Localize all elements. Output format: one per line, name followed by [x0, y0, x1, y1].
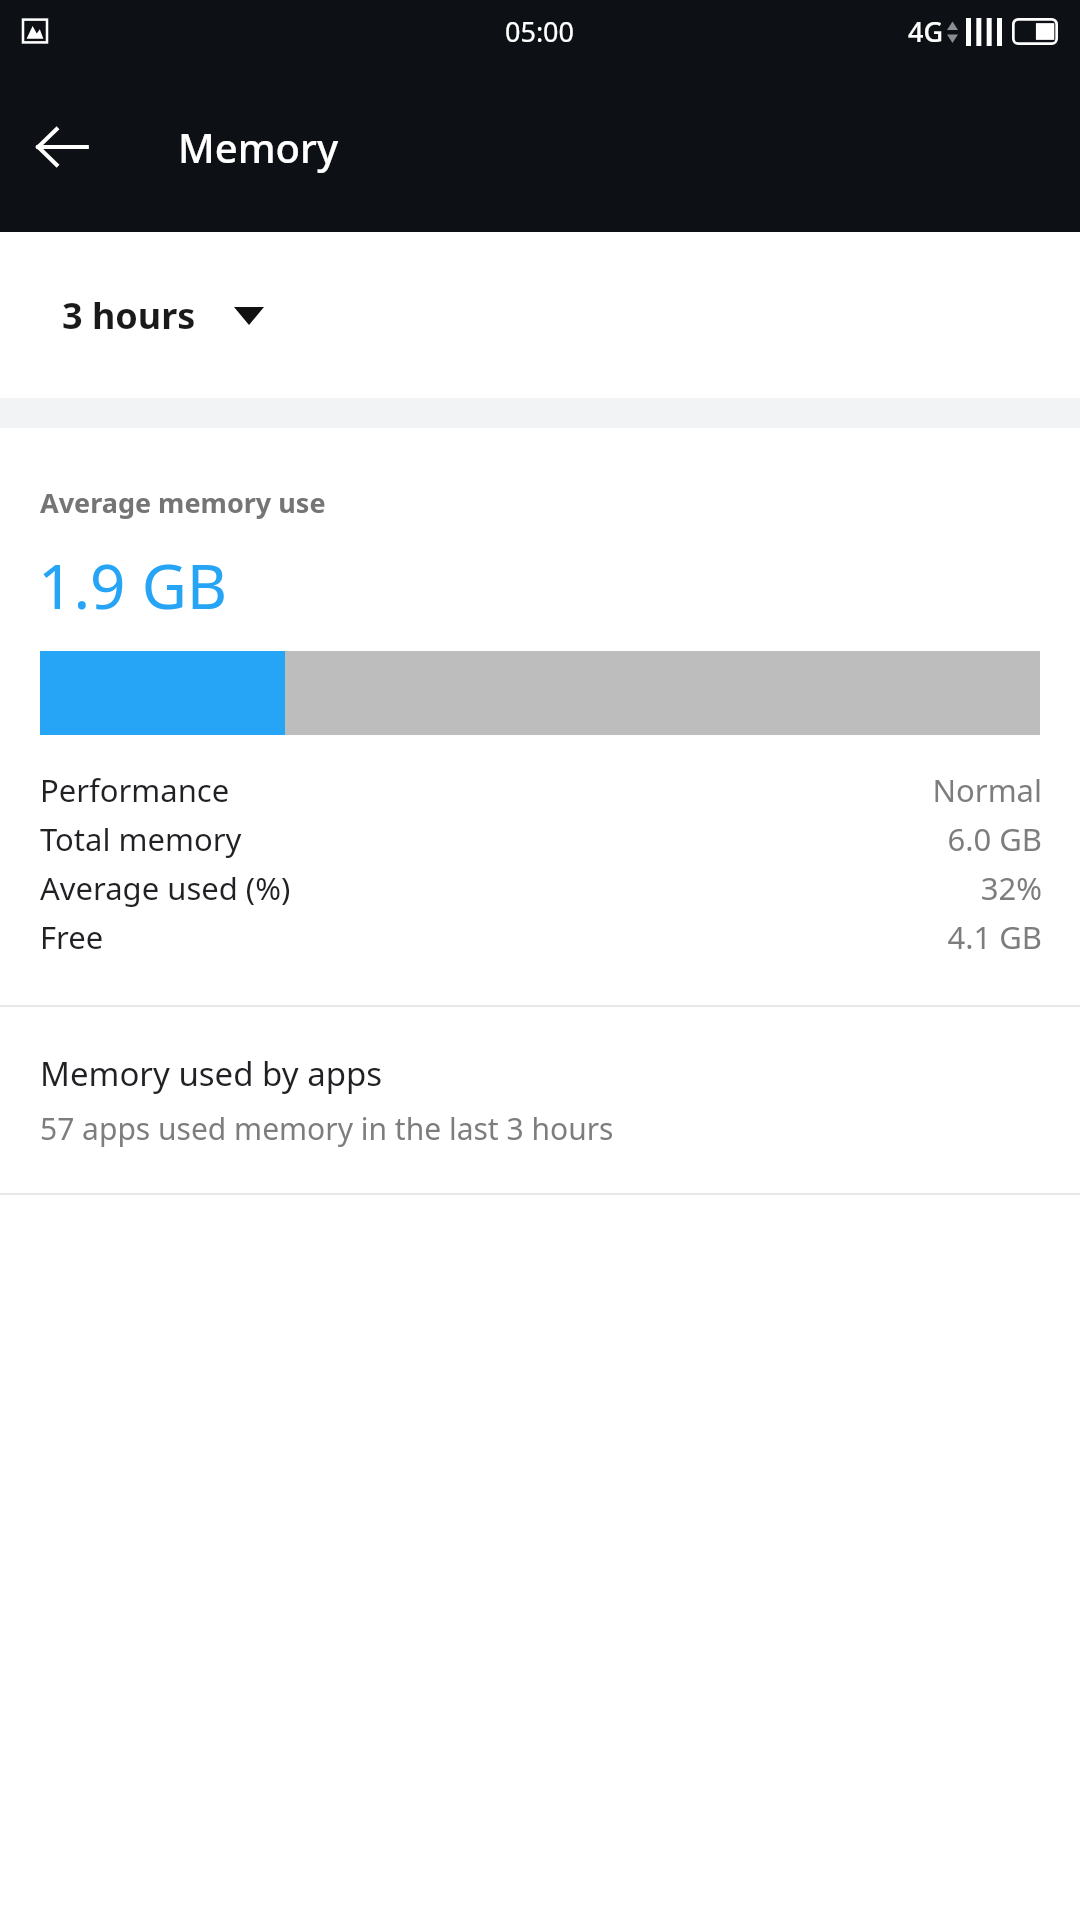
staticText: Average memory use [40, 484, 326, 521]
staticText: 3 hours [62, 291, 196, 340]
button[interactable]: Total memory [0, 814, 1080, 863]
button[interactable]: Performance [0, 765, 1080, 814]
staticText: Average used (%) [40, 867, 291, 909]
staticText: 4.1 GB [947, 916, 1042, 958]
button[interactable]: 3 hours [40, 277, 286, 354]
button[interactable]: Back [24, 109, 100, 185]
staticText: 4G [908, 13, 944, 50]
staticText: 6.0 GB [947, 818, 1042, 860]
staticText: 32% [980, 867, 1042, 909]
staticText: Normal [932, 769, 1042, 811]
staticText: 1.9 GB [38, 543, 228, 627]
button[interactable]: Memory used by apps [0, 1007, 1080, 1193]
button[interactable]: Free [0, 912, 1080, 961]
staticText: Total memory [40, 818, 242, 860]
staticText: 57 apps used memory in the last 3 hours [40, 1108, 614, 1149]
staticText: 05:00 [505, 13, 575, 50]
staticText: Performance [40, 769, 230, 811]
staticText: Memory used by apps [40, 1051, 383, 1096]
button[interactable]: Average used (%) [0, 863, 1080, 912]
staticText: Free [40, 916, 104, 958]
staticText: Memory [178, 120, 339, 174]
